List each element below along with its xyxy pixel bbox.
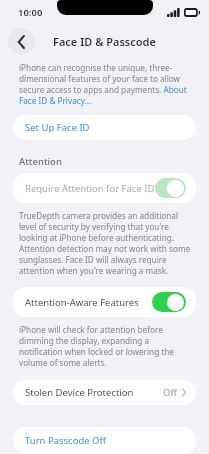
button[interactable]: Toggle xyxy=(155,178,186,198)
button[interactable]: Stolen Device Protection xyxy=(13,380,196,405)
button[interactable]: Attention-Aware Features xyxy=(13,287,196,317)
staticText: Attention xyxy=(19,155,62,168)
button[interactable]: Set Up Face ID xyxy=(13,115,196,140)
staticText: Attention-Aware Features xyxy=(25,296,139,309)
button[interactable]: Turn Passcode Off xyxy=(13,427,196,454)
staticText: Set Up Face ID xyxy=(25,121,90,134)
staticText: Turn Passcode Off xyxy=(25,434,107,447)
button[interactable]: Require Attention for Face ID xyxy=(13,173,196,203)
staticText: Require Attention for Face ID xyxy=(25,182,155,195)
staticText: 10:00 xyxy=(18,6,43,19)
button[interactable]: Back xyxy=(8,28,35,55)
button[interactable]: Toggle xyxy=(152,292,186,312)
staticText: Stolen Device Protection xyxy=(25,386,134,399)
staticText: iPhone will check for attention before d… xyxy=(19,324,192,368)
staticText: TrueDepth camera provides an additional … xyxy=(19,210,192,276)
staticText: iPhone can recognise the unique, three-d… xyxy=(19,62,193,106)
staticText: Off xyxy=(163,386,177,399)
staticText: Face ID & Passcode xyxy=(53,34,156,49)
